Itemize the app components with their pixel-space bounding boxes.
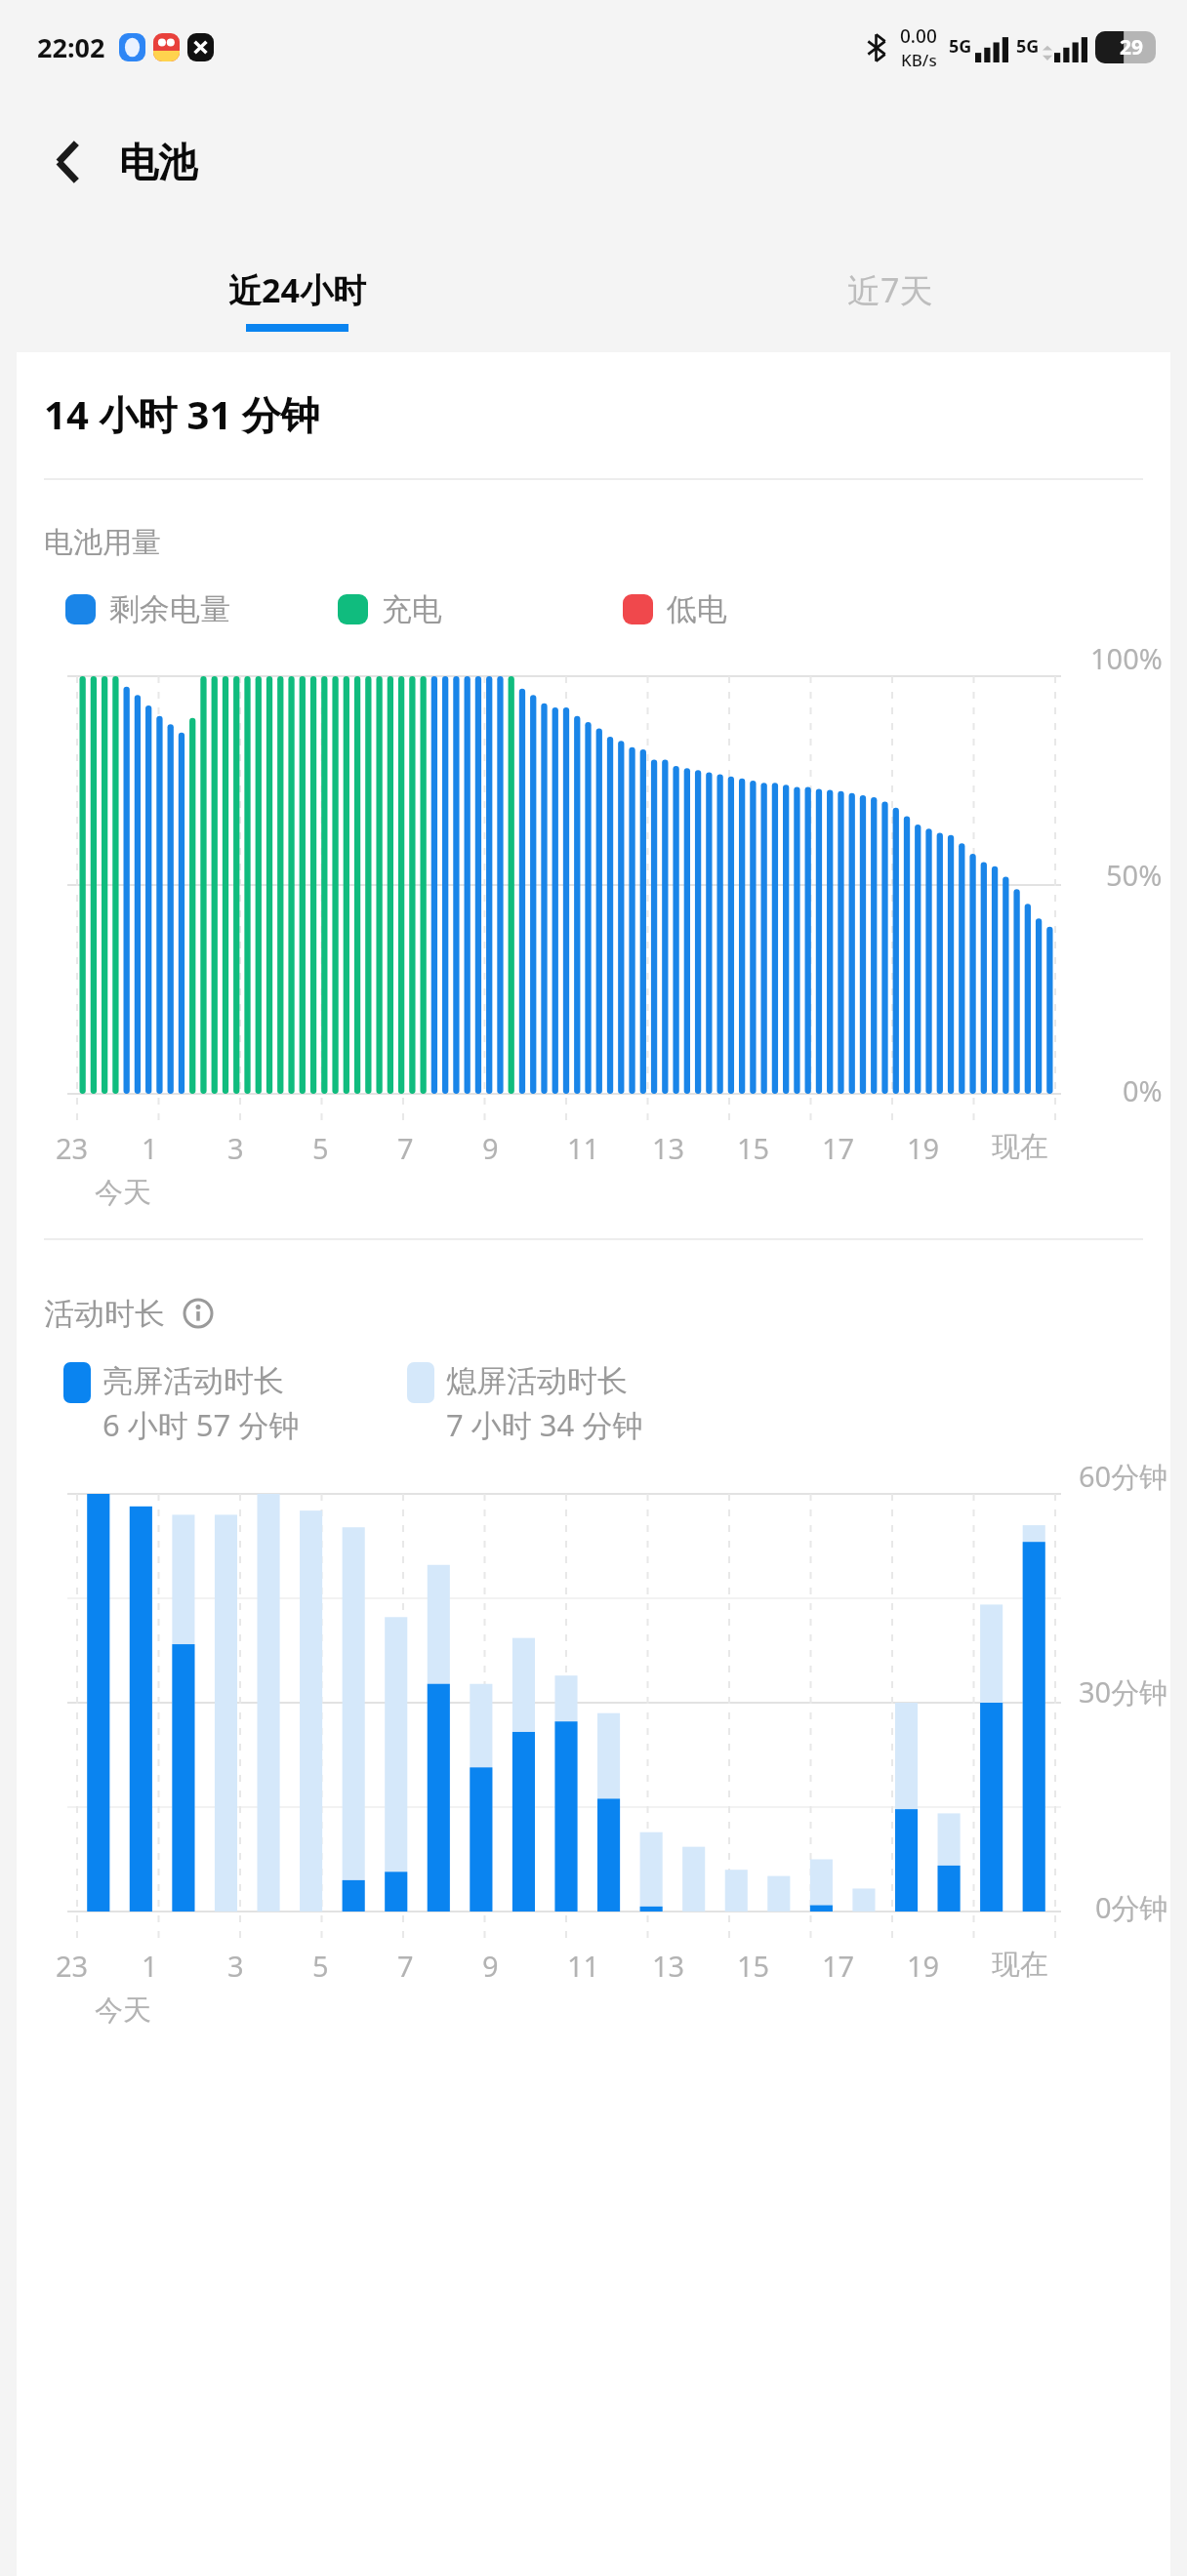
staticText: 15: [737, 1129, 770, 1167]
staticText: 3: [227, 1947, 244, 1985]
staticText: 6 小时 57 分钟: [102, 1404, 300, 1445]
staticText: 充电: [382, 590, 442, 628]
staticText: 活动时长: [44, 1295, 165, 1333]
staticText: 0分钟: [1095, 1888, 1168, 1927]
staticText: 15: [737, 1947, 770, 1985]
staticText: 14 小时 31 分钟: [44, 387, 320, 441]
staticText: 3: [227, 1129, 244, 1167]
staticText: 5: [312, 1129, 329, 1167]
staticText: 7 小时 34 分钟: [446, 1404, 643, 1445]
staticText: 9: [482, 1129, 499, 1167]
staticText: 11: [567, 1129, 600, 1167]
staticText: 剩余电量: [109, 590, 230, 628]
staticText: 7: [397, 1129, 414, 1167]
staticText: 13: [652, 1947, 685, 1985]
button[interactable]: Info: [179, 1294, 218, 1333]
staticText: 0.00: [900, 23, 937, 49]
staticText: 今天: [95, 1175, 151, 1211]
staticText: 11: [567, 1947, 600, 1985]
staticText: 30分钟: [1079, 1672, 1168, 1711]
staticText: 电池用量: [44, 524, 161, 561]
staticText: 电池: [119, 138, 197, 186]
staticText: 5G: [949, 34, 972, 59]
staticText: 7: [397, 1947, 414, 1985]
button[interactable]: Back: [39, 133, 98, 191]
staticText: 亮屏活动时长: [102, 1362, 284, 1400]
staticText: 1: [142, 1947, 158, 1985]
staticText: 近7天: [847, 267, 933, 312]
staticText: 100%: [1090, 639, 1163, 677]
staticText: 9: [482, 1947, 499, 1985]
staticText: KB/s: [901, 49, 937, 71]
staticText: 近24小时: [228, 267, 366, 312]
button[interactable]: 近24小时: [0, 230, 593, 352]
staticText: 5G: [1016, 34, 1040, 59]
button[interactable]: 近7天: [593, 230, 1187, 352]
staticText: 17: [822, 1947, 855, 1985]
staticText: 低电: [667, 590, 727, 628]
staticText: 5: [312, 1947, 329, 1985]
staticText: 17: [822, 1129, 855, 1167]
staticText: 13: [652, 1129, 685, 1167]
staticText: 今天: [95, 1992, 151, 2029]
staticText: 60分钟: [1079, 1457, 1168, 1496]
staticText: 现在: [992, 1947, 1048, 1983]
staticText: 19: [907, 1947, 940, 1985]
staticText: 23: [56, 1947, 89, 1985]
staticText: 19: [907, 1129, 940, 1167]
staticText: 0%: [1123, 1071, 1163, 1109]
staticText: 29: [1120, 33, 1144, 61]
staticText: 50%: [1106, 856, 1163, 894]
staticText: 22:02: [37, 29, 105, 65]
staticText: 熄屏活动时长: [446, 1362, 628, 1400]
staticText: 23: [56, 1129, 89, 1167]
staticText: 1: [142, 1129, 158, 1167]
staticText: 现在: [992, 1129, 1048, 1165]
